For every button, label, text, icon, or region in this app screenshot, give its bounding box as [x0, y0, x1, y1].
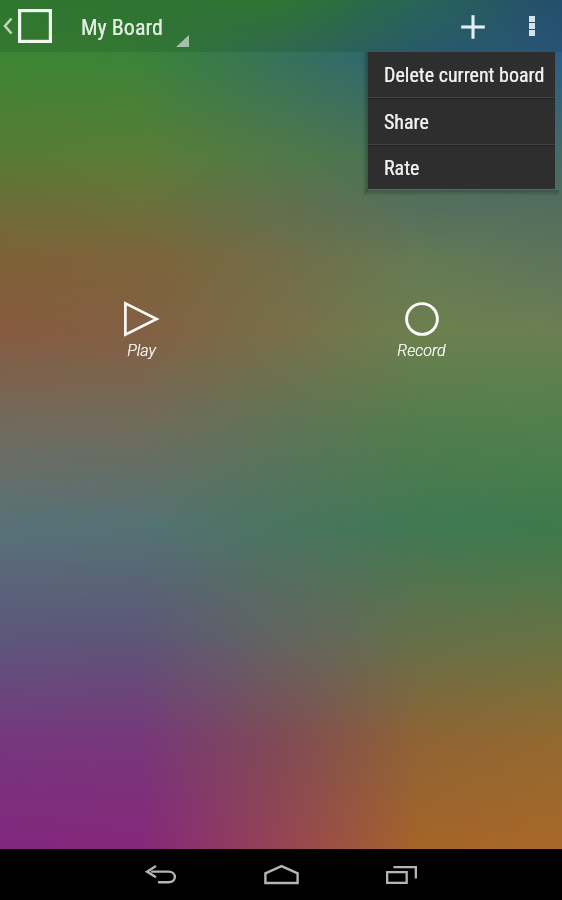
button[interactable]: Share	[368, 99, 555, 144]
button[interactable]: Rate	[368, 146, 555, 189]
staticText: Rate	[384, 156, 420, 179]
button[interactable]: Add	[445, 1, 501, 53]
staticText: Share	[384, 110, 429, 133]
button[interactable]: Recent apps	[366, 849, 436, 900]
staticText: Play	[127, 341, 156, 360]
button[interactable]: Play	[98, 296, 184, 366]
button[interactable]: Home	[246, 849, 316, 900]
button[interactable]: Delete current board	[368, 52, 555, 97]
button[interactable]: Navigate up	[0, 0, 58, 52]
button[interactable]: More options	[505, 0, 559, 52]
button[interactable]: Back	[126, 849, 196, 900]
button[interactable]: Record	[371, 296, 472, 366]
staticText: Delete current board	[384, 63, 545, 86]
staticText: Record	[397, 341, 446, 360]
staticText: My Board	[81, 15, 163, 41]
